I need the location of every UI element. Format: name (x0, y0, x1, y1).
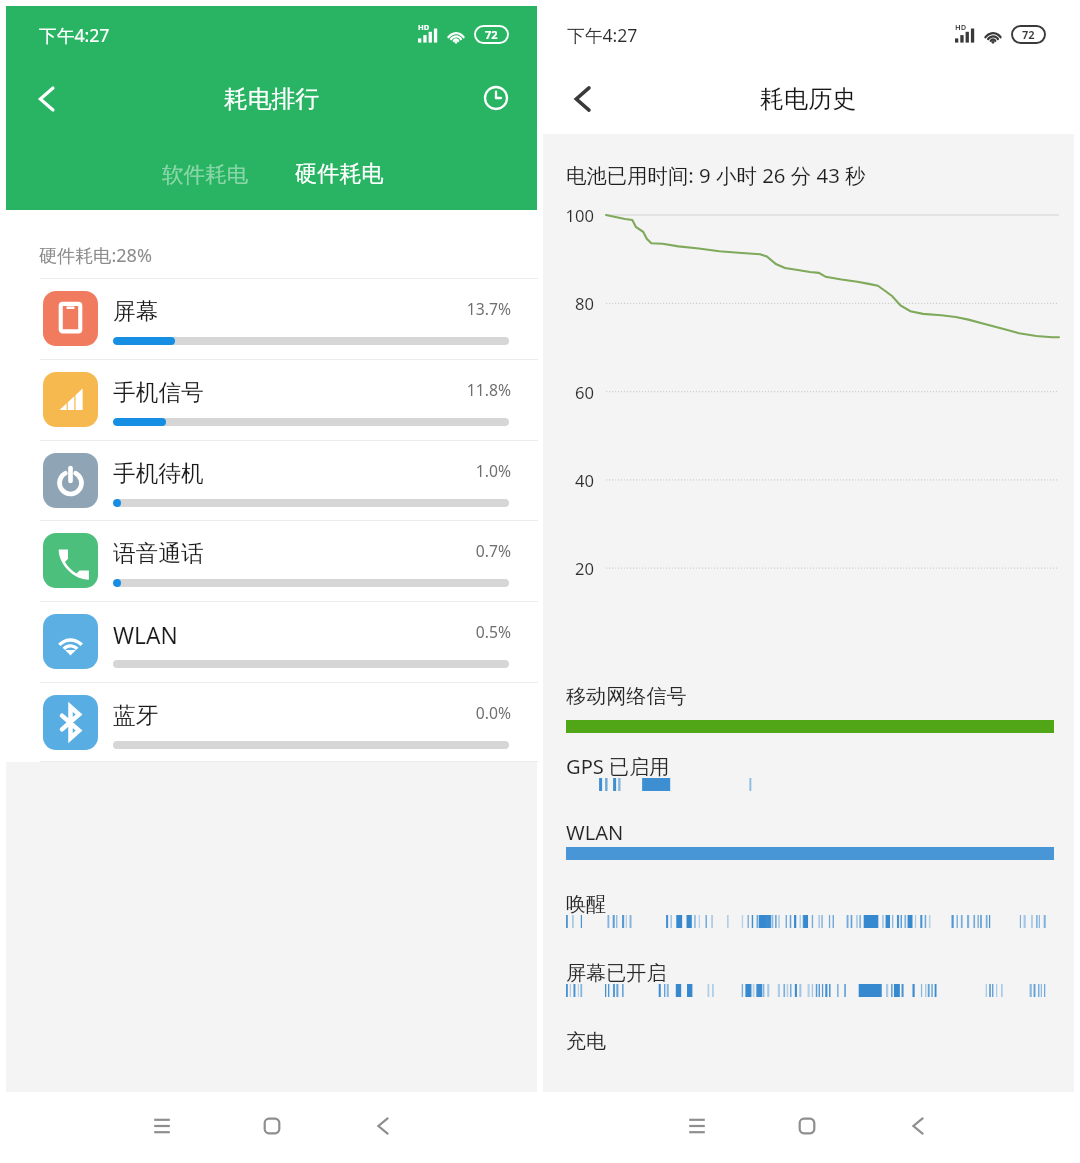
staticText: 13.7% (466, 298, 511, 319)
staticText: 屏幕已开启 (566, 961, 667, 986)
staticText: 下午4:27 (567, 23, 638, 47)
staticText: HD (955, 22, 967, 32)
staticText: 72 (1022, 27, 1035, 42)
button[interactable]: 软件耗电 (150, 153, 260, 195)
staticText: 屏幕 (113, 297, 159, 326)
staticText: 唤醒 (566, 892, 607, 917)
staticText: 移动网络信号 (566, 684, 687, 709)
staticText: 72 (485, 27, 498, 42)
button[interactable]: 屏幕 (6, 278, 537, 359)
staticText: 40 (575, 469, 594, 492)
staticText: HD (418, 22, 430, 32)
staticText: WLAN (113, 620, 178, 651)
staticText: 蓝牙 (113, 701, 159, 730)
button[interactable]: 手机待机 (6, 440, 537, 521)
button[interactable]: Back (24, 76, 70, 122)
staticText: WLAN (566, 819, 624, 846)
staticText: 100 (565, 204, 594, 227)
staticText: GPS 已启用 (566, 753, 670, 780)
staticText: 电池已用时间: 9 小时 26 分 43 秒 (566, 161, 866, 189)
staticText: 耗电历史 (760, 84, 857, 114)
staticText: 0.5% (475, 621, 511, 642)
button[interactable]: Recent apps (675, 1104, 719, 1148)
staticText: 80 (575, 292, 594, 315)
button[interactable]: Back (361, 1104, 405, 1148)
staticText: 0.7% (475, 540, 511, 561)
button[interactable]: Home (250, 1104, 294, 1148)
staticText: 手机待机 (113, 459, 204, 488)
button[interactable]: Recent apps (140, 1104, 184, 1148)
staticText: 11.8% (466, 379, 511, 400)
button[interactable]: 蓝牙 (6, 682, 537, 763)
staticText: 1.0% (475, 460, 511, 481)
staticText: 下午4:27 (39, 23, 110, 47)
staticText: 语音通话 (113, 539, 204, 568)
button[interactable]: 语音通话 (6, 520, 537, 601)
button[interactable]: Back (560, 76, 606, 122)
staticText: 手机信号 (113, 378, 204, 407)
button[interactable]: History (474, 76, 518, 120)
staticText: 硬件耗电:28% (39, 243, 152, 268)
staticText: 软件耗电 (162, 161, 249, 188)
button[interactable]: 硬件耗电 (284, 153, 394, 195)
staticText: 60 (575, 381, 594, 404)
staticText: 0.0% (475, 702, 511, 723)
staticText: 耗电排行 (224, 84, 320, 114)
button[interactable]: Home (785, 1104, 829, 1148)
staticText: 硬件耗电 (295, 160, 384, 188)
button[interactable]: 手机信号 (6, 359, 537, 440)
staticText: 20 (575, 557, 594, 580)
button[interactable]: WLAN (6, 601, 537, 682)
button[interactable]: Back (896, 1104, 940, 1148)
staticText: 充电 (566, 1029, 607, 1054)
